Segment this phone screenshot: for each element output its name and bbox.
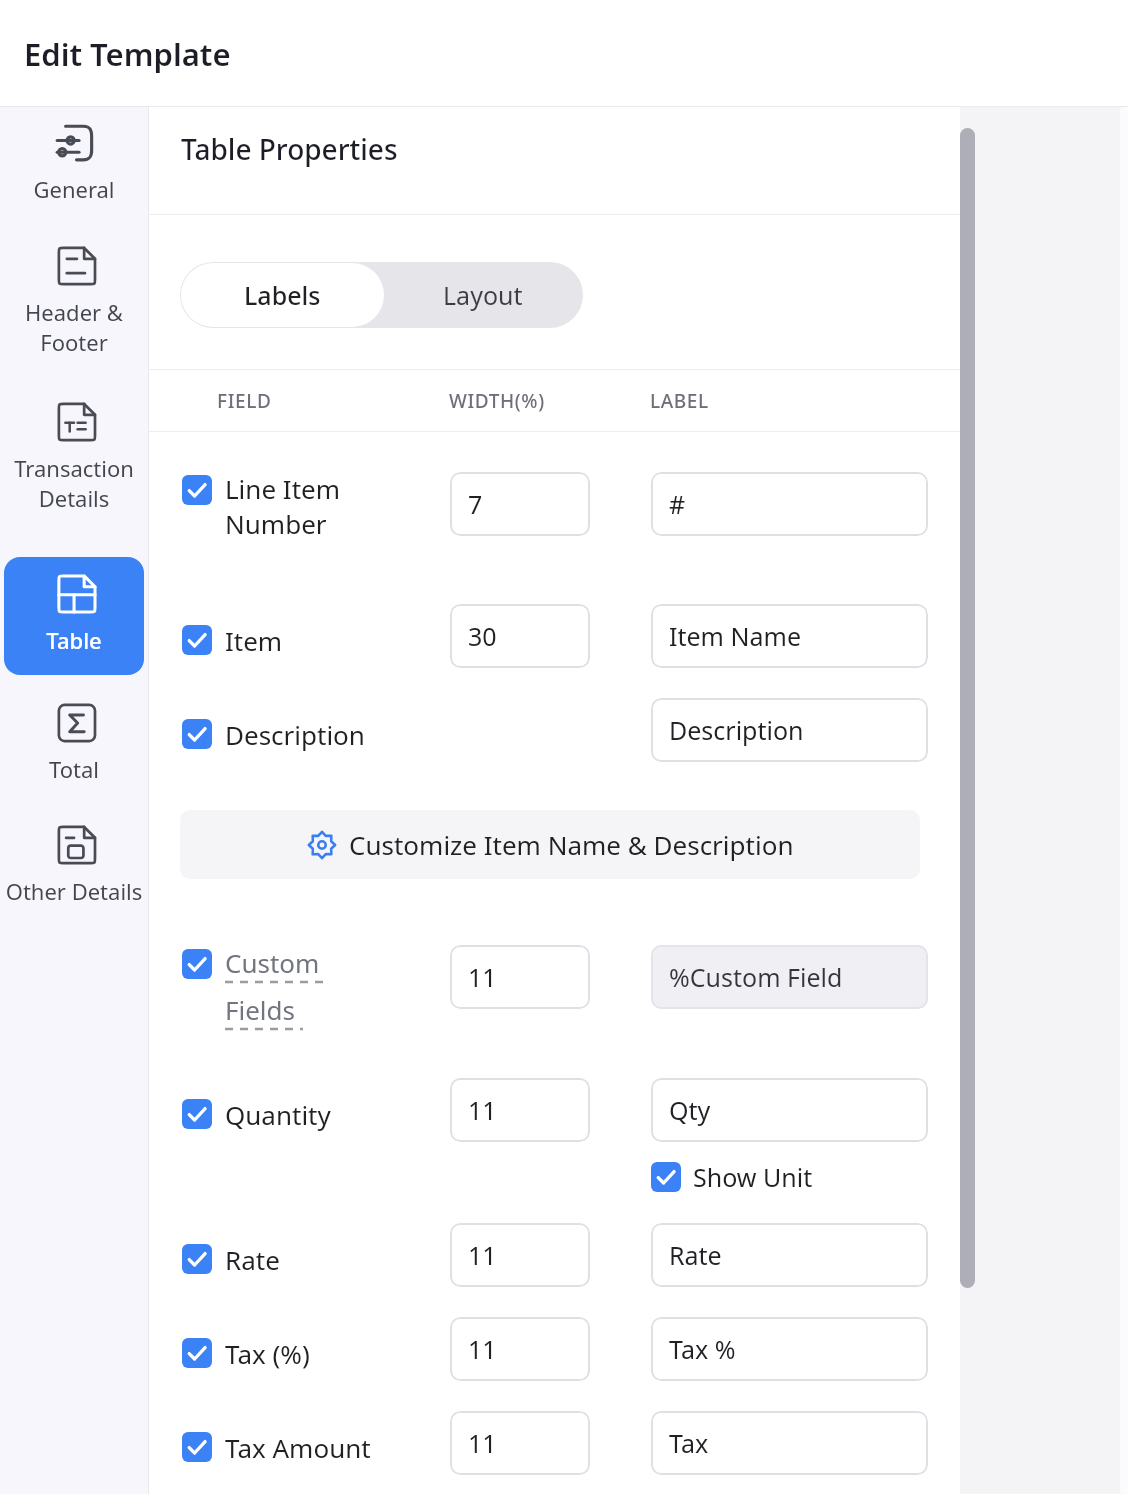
button[interactable]: Description — [651, 698, 928, 762]
button[interactable]: Tax — [651, 1411, 928, 1475]
button[interactable]: %Custom Field Label' — [651, 945, 928, 1009]
staticText: Line Item Number — [225, 471, 340, 541]
button[interactable]: Item Name — [651, 604, 928, 668]
staticText: Rate — [225, 1242, 280, 1277]
button[interactable]: 11 — [450, 1317, 590, 1381]
staticText: Tax % — [669, 1332, 736, 1366]
staticText: Layout — [443, 278, 523, 312]
staticText: Description — [669, 713, 804, 747]
button[interactable]: 11 — [450, 1223, 590, 1287]
staticText: Other Details — [4, 876, 144, 906]
staticText: Labels — [244, 278, 321, 312]
staticText: 11 — [468, 1093, 497, 1127]
button[interactable]: Tax Amount — [182, 1429, 432, 1465]
staticText: %Custom Field Label' — [669, 960, 910, 994]
button[interactable]: General — [4, 122, 144, 204]
staticText: 7 — [468, 487, 483, 521]
staticText: Tax — [669, 1426, 709, 1460]
staticText: Item — [225, 623, 283, 658]
staticText: Fields — [225, 992, 296, 1027]
staticText: LABEL — [650, 388, 709, 414]
staticText: Customize Item Name & Description — [349, 827, 794, 862]
staticText: 11 — [468, 1238, 497, 1272]
button[interactable]: Transaction Details — [4, 401, 144, 513]
button[interactable]: 11 — [450, 945, 590, 1009]
staticText: Quantity — [225, 1097, 331, 1132]
staticText: 11 — [468, 1332, 497, 1366]
staticText: 11 — [468, 1426, 497, 1460]
button[interactable]: Labels — [181, 263, 384, 327]
staticText: Header & Footer — [4, 297, 144, 357]
staticText: Transaction Details — [4, 453, 144, 513]
button[interactable]: Table — [4, 557, 144, 675]
staticText: 30 — [468, 619, 497, 653]
button[interactable]: # — [651, 472, 928, 536]
staticText: Show Unit — [693, 1160, 813, 1194]
staticText: FIELD — [217, 388, 272, 414]
button[interactable]: Tax (%) — [182, 1335, 432, 1371]
button[interactable]: Line Item Number — [182, 471, 432, 541]
staticText: # — [669, 487, 686, 521]
button[interactable]: Rate — [182, 1241, 432, 1277]
staticText: 11 — [468, 960, 497, 994]
button[interactable]: 11 — [450, 1411, 590, 1475]
button[interactable]: Tax % — [651, 1317, 928, 1381]
button[interactable]: 30 — [450, 604, 590, 668]
button[interactable]: Custom — [182, 945, 432, 1031]
button[interactable]: Header & Footer — [4, 245, 144, 357]
staticText: Tax (%) — [225, 1336, 310, 1371]
staticText: Rate — [669, 1238, 722, 1272]
staticText: Tax Amount — [225, 1430, 371, 1465]
staticText: WIDTH(%) — [449, 388, 545, 414]
staticText: General — [4, 174, 144, 204]
staticText: Edit Template — [24, 33, 231, 75]
button[interactable]: Other Details — [4, 824, 144, 906]
staticText: Total — [4, 754, 144, 784]
button[interactable]: Qty — [651, 1078, 928, 1142]
staticText: Table — [4, 625, 144, 655]
button[interactable]: Total — [4, 702, 144, 784]
staticText: Qty — [669, 1093, 711, 1127]
button[interactable]: Show Unit — [651, 1160, 813, 1194]
staticText: Description — [225, 717, 365, 752]
button[interactable]: Quantity — [182, 1096, 432, 1132]
staticText: Table Properties — [181, 130, 398, 168]
staticText: Item Name — [669, 619, 801, 653]
button[interactable]: Item — [182, 622, 432, 658]
button[interactable]: Rate — [651, 1223, 928, 1287]
button[interactable]: 7 — [450, 472, 590, 536]
button[interactable]: Customize Item Name & Description — [180, 810, 920, 879]
button[interactable]: 11 — [450, 1078, 590, 1142]
button[interactable]: Layout — [384, 263, 582, 327]
button[interactable]: Description — [182, 716, 432, 752]
staticText: Custom — [225, 945, 320, 980]
